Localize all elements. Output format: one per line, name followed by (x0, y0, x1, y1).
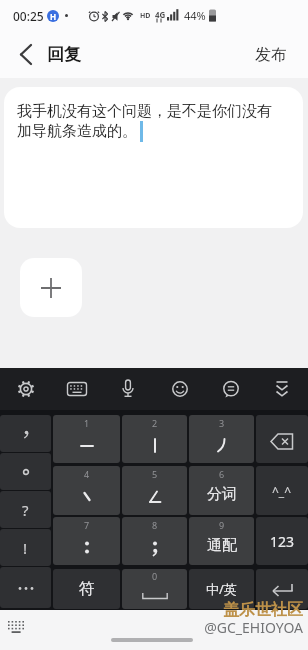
staticText: 44% (184, 8, 206, 23)
button[interactable] (0, 567, 51, 608)
button[interactable] (256, 569, 308, 609)
staticText: 分词 (207, 485, 237, 504)
staticText: 通配 (207, 536, 237, 555)
staticText: HD (140, 11, 151, 21)
button[interactable]: 中/英 (189, 569, 254, 609)
staticText: 00:25 (13, 8, 44, 24)
staticText: 中/英 (206, 580, 237, 598)
button[interactable] (113, 376, 143, 403)
button[interactable]: 123 (256, 517, 308, 565)
staticText: 2 (152, 417, 158, 429)
staticText: 8 (152, 519, 158, 531)
staticText: @GC_EHIOYOA (0, 618, 303, 637)
button[interactable]: 7 (53, 517, 120, 565)
button[interactable] (216, 376, 246, 403)
button[interactable] (0, 453, 51, 490)
button[interactable]: 2 (122, 415, 187, 463)
button[interactable]: 8 (122, 517, 187, 565)
button[interactable]: ! (0, 529, 51, 566)
staticText: 6 (219, 468, 225, 480)
button[interactable] (0, 415, 51, 452)
staticText: ^_^ (272, 483, 292, 499)
staticText: 盖乐世社区 (0, 600, 303, 620)
button[interactable]: 发布 (246, 38, 296, 72)
button[interactable] (20, 258, 82, 317)
staticText: 5 (152, 468, 158, 480)
staticText: ? (22, 500, 29, 520)
button[interactable] (256, 415, 308, 463)
staticText: 我手机没有这个问题，是不是你们没有 (17, 102, 272, 121)
staticText: 4 (84, 468, 90, 480)
button[interactable] (8, 40, 40, 70)
button[interactable]: 4 (53, 466, 120, 515)
button[interactable]: 我手机没有这个问题，是不是你们没有 (4, 87, 303, 228)
staticText: 发布 (255, 45, 287, 65)
button[interactable]: 0 (122, 569, 187, 609)
button[interactable]: 5 (122, 466, 187, 515)
button[interactable]: ? (0, 491, 51, 528)
staticText: 加导航条造成的。 (17, 122, 137, 141)
staticText: 7 (84, 519, 90, 531)
staticText: H (50, 11, 57, 22)
button[interactable]: 符 (53, 569, 120, 609)
button[interactable]: ^_^ (256, 466, 308, 515)
button[interactable] (62, 376, 92, 403)
button[interactable] (165, 376, 195, 403)
staticText: ! (23, 538, 28, 558)
button[interactable]: 6 (189, 466, 254, 515)
staticText: 9 (219, 519, 225, 531)
staticText: 123 (270, 532, 295, 551)
staticText: 回复 (47, 44, 81, 65)
button[interactable]: 9 (189, 517, 254, 565)
staticText: 4G (155, 9, 166, 20)
button[interactable]: 1 (53, 415, 120, 463)
staticText: 0 (152, 570, 158, 582)
staticText: 符 (79, 579, 95, 599)
button[interactable] (11, 376, 41, 403)
button[interactable]: 3 (189, 415, 254, 463)
staticText: 3 (219, 417, 225, 429)
staticText: 1 (84, 417, 90, 429)
button[interactable] (267, 376, 297, 403)
